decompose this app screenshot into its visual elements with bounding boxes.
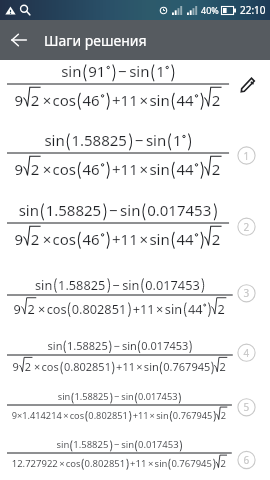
staticText: Шаги решения [44, 31, 147, 50]
staticText: 22:10 [240, 3, 266, 17]
staticText: 40% [201, 4, 219, 16]
button[interactable]: Back [0, 21, 38, 59]
